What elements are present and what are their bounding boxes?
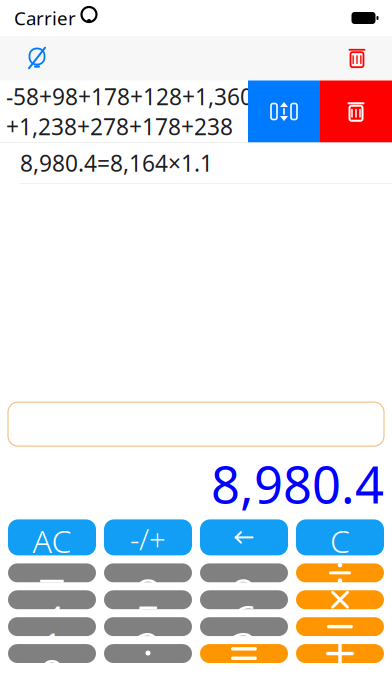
staticText: -58+98+178+128+1,360+238+ +1,238+278+178… xyxy=(6,81,318,142)
staticText: 0 xyxy=(37,644,66,663)
button[interactable]: 5 xyxy=(104,590,192,609)
button[interactable]: 8,980.4=8,164×1.1 xyxy=(0,143,392,183)
button[interactable]: 6 xyxy=(200,590,288,609)
button[interactable]: Restore xyxy=(248,80,320,142)
staticText: 7 xyxy=(37,563,66,582)
staticText: 8 xyxy=(133,563,162,582)
button[interactable]: 9 xyxy=(200,563,288,582)
button[interactable]: Delete xyxy=(320,80,392,142)
button[interactable]: 2 xyxy=(104,617,192,636)
button[interactable] xyxy=(104,644,192,663)
button[interactable]: Delete all history xyxy=(336,41,378,75)
button[interactable]: 1 xyxy=(8,617,96,636)
staticText: 3 xyxy=(229,617,258,636)
staticText: 5 xyxy=(133,590,162,609)
staticText: 6 xyxy=(229,590,258,609)
button[interactable]: 0 xyxy=(8,644,96,663)
button[interactable]: 3 xyxy=(200,617,288,636)
staticText: -/+ xyxy=(130,519,166,555)
button[interactable] xyxy=(296,644,384,663)
button[interactable] xyxy=(200,519,288,555)
button[interactable]: -/+ xyxy=(104,519,192,555)
staticText: 9 xyxy=(229,563,258,582)
button[interactable]: AC xyxy=(8,519,96,555)
button[interactable] xyxy=(296,617,384,636)
button[interactable]: C xyxy=(296,519,384,555)
button[interactable]: Mute notifications xyxy=(14,39,60,77)
staticText: C xyxy=(330,519,350,555)
staticText: 4 xyxy=(37,590,66,609)
button[interactable] xyxy=(296,563,384,582)
staticText: 1 xyxy=(37,617,66,636)
staticText: 8,980.4=8,164×1.1 xyxy=(20,148,213,178)
button[interactable]: 8 xyxy=(104,563,192,582)
button[interactable]: 4 xyxy=(8,590,96,609)
staticText: Carrier xyxy=(14,6,76,30)
button[interactable]: 7 xyxy=(8,563,96,582)
button[interactable] xyxy=(200,644,288,663)
staticText: 2 xyxy=(133,617,162,636)
staticText: AC xyxy=(32,519,71,555)
button[interactable] xyxy=(296,590,384,609)
staticText: 8,980.4 xyxy=(211,450,384,517)
